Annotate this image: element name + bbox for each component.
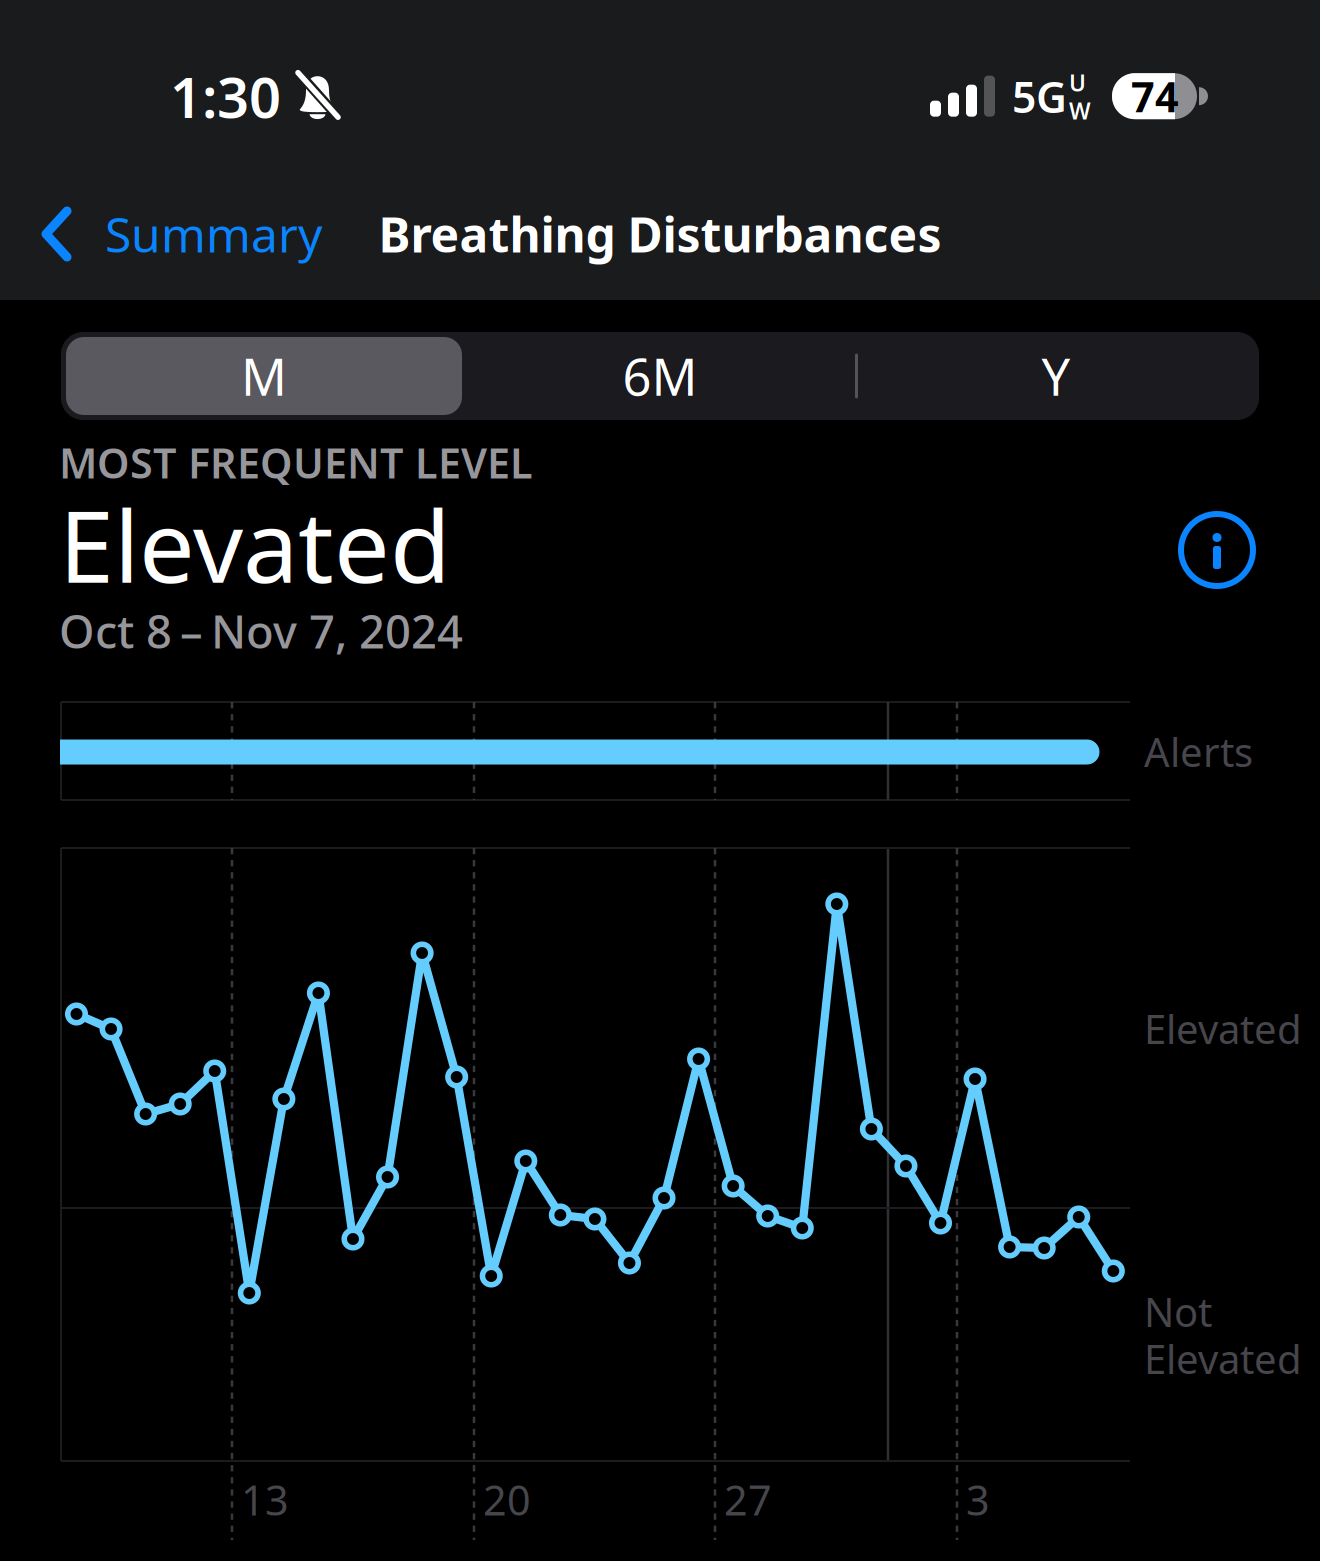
staticText: 13 xyxy=(241,1472,289,1527)
staticText: 1:30 xyxy=(170,59,281,133)
staticText: Elevated xyxy=(1144,1002,1302,1055)
staticText: U xyxy=(1069,68,1086,98)
button[interactable]: Summary xyxy=(0,186,334,282)
staticText: 74 xyxy=(1131,69,1179,124)
staticText: MOST FREQUENT LEVEL xyxy=(59,435,533,490)
button[interactable]: M xyxy=(66,337,462,415)
staticText: M xyxy=(241,342,287,410)
staticText: Alerts xyxy=(1144,725,1253,778)
staticText: Breathing Disturbances xyxy=(378,202,941,266)
staticText: 6M xyxy=(622,342,697,410)
button[interactable]: Y xyxy=(858,337,1254,415)
staticText: 27 xyxy=(724,1472,772,1527)
staticText: Not xyxy=(1144,1285,1212,1338)
staticText: Oct 8 – Nov 7, 2024 xyxy=(59,601,463,661)
staticText: 20 xyxy=(483,1472,531,1527)
staticText: W xyxy=(1069,96,1091,126)
staticText: 3 xyxy=(966,1472,990,1527)
staticText: Elevated xyxy=(1144,1332,1302,1385)
button[interactable]: About Breathing Disturbances xyxy=(1180,435,1254,587)
staticText: Summary xyxy=(105,202,322,266)
staticText: Y xyxy=(1041,342,1070,410)
staticText: 5G xyxy=(1012,68,1067,125)
staticText: Elevated xyxy=(59,479,451,610)
button[interactable]: 6M xyxy=(462,337,858,415)
